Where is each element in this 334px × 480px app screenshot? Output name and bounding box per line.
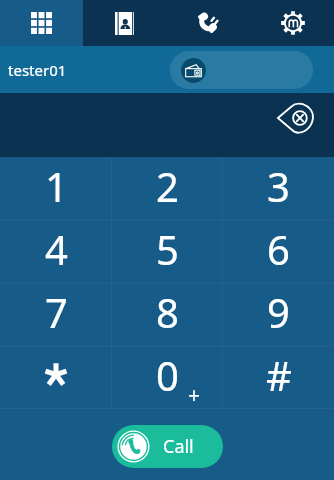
- button[interactable]: Dialpad: [0, 0, 83, 46]
- staticText: 8: [156, 285, 179, 339]
- button[interactable]: 9: [223, 283, 334, 346]
- button[interactable]: Settings: [250, 0, 334, 46]
- button[interactable]: 6: [223, 220, 334, 283]
- staticText: 5: [156, 222, 179, 276]
- button[interactable]: 0: [112, 346, 223, 409]
- button[interactable]: tester01: [0, 46, 334, 93]
- button[interactable]: Call: [112, 425, 223, 468]
- staticText: #: [266, 348, 292, 402]
- button[interactable]: 3: [223, 157, 334, 220]
- button[interactable]: Backspace: [273, 96, 317, 140]
- staticText: 4: [45, 222, 68, 276]
- staticText: tester01: [8, 60, 67, 80]
- staticText: 3: [267, 159, 290, 213]
- staticText: 6: [267, 222, 290, 276]
- staticText: 2: [156, 159, 179, 213]
- staticText: Call: [163, 434, 194, 459]
- button[interactable]: Contacts: [83, 0, 166, 46]
- button[interactable]: 7: [0, 283, 112, 346]
- button[interactable]: 2: [112, 157, 223, 220]
- staticText: 9: [267, 285, 290, 339]
- staticText: 0: [156, 348, 179, 402]
- button[interactable]: 5: [112, 220, 223, 283]
- button[interactable]: Balance: [170, 51, 313, 89]
- button[interactable]: 4: [0, 220, 112, 283]
- button[interactable]: 8: [112, 283, 223, 346]
- staticText: +: [188, 381, 201, 410]
- button[interactable]: 1: [0, 157, 112, 220]
- staticText: 7: [45, 285, 68, 339]
- button[interactable]: Call history: [166, 0, 250, 46]
- button[interactable]: #: [223, 346, 334, 409]
- staticText: 1: [45, 159, 68, 213]
- button[interactable]: [0, 346, 112, 409]
